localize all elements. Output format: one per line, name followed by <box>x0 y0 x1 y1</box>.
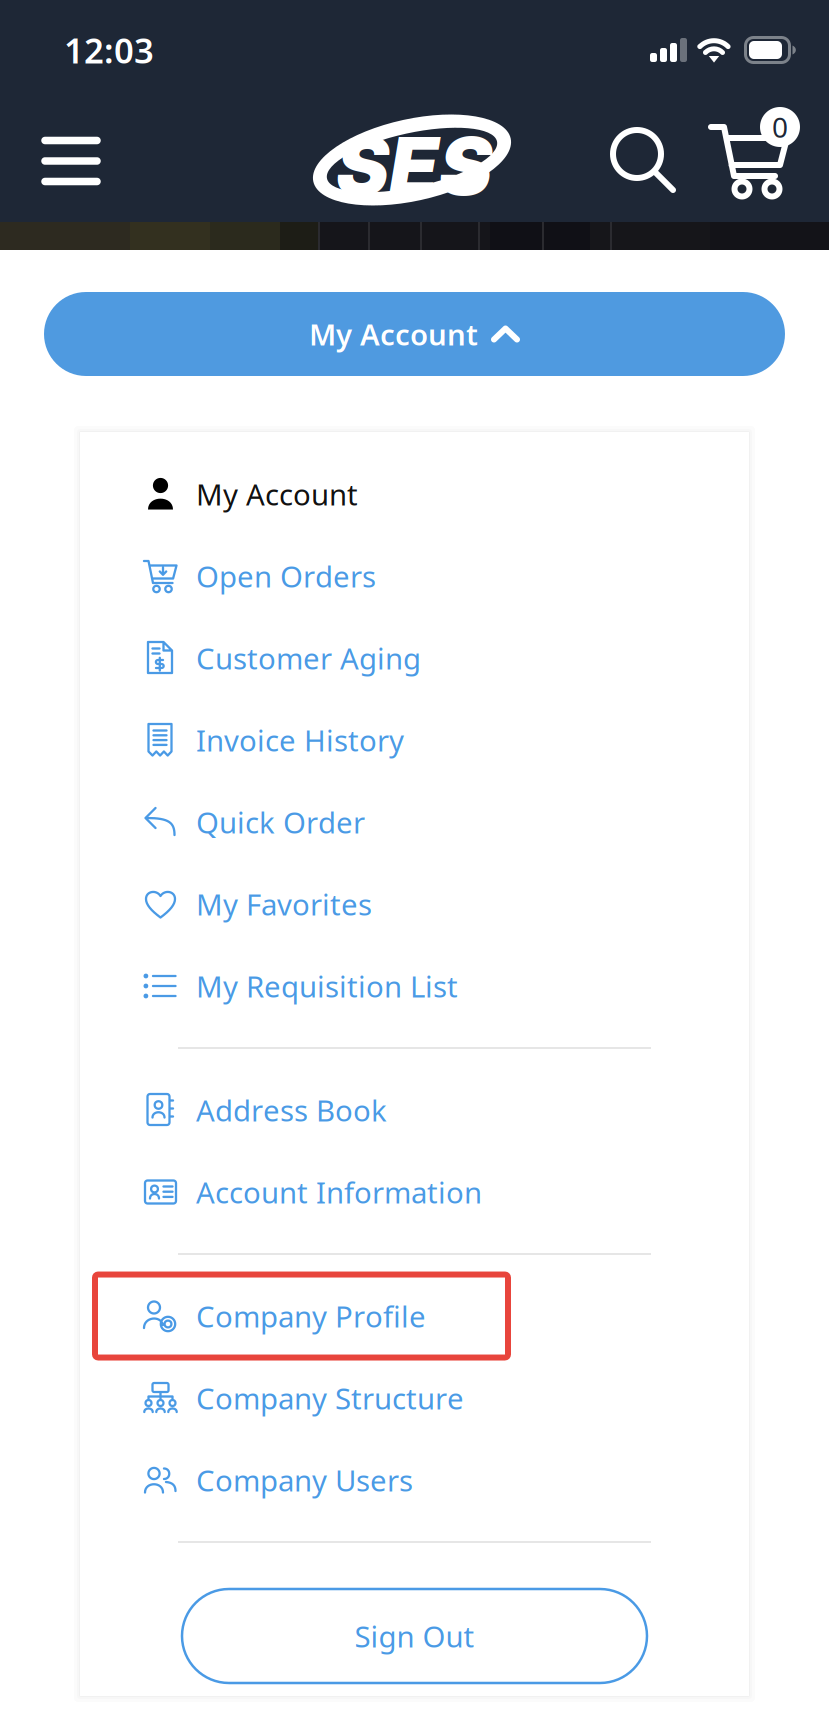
staticText: Company Profile <box>196 1296 426 1335</box>
staticText: 12:03 <box>64 27 154 73</box>
button[interactable]: Company Profile <box>80 1275 749 1357</box>
staticText: Sign Out <box>354 1616 474 1655</box>
button[interactable]: Account Information <box>80 1151 749 1233</box>
button[interactable]: My Favorites <box>80 863 749 945</box>
staticText: My Requisition List <box>196 966 458 1005</box>
button[interactable]: My Requisition List <box>80 945 749 1027</box>
button[interactable]: Sign Out <box>182 1589 647 1683</box>
staticText: 0 <box>772 108 788 146</box>
button[interactable]: Open Orders <box>80 535 749 617</box>
button[interactable]: Search <box>596 103 692 219</box>
button[interactable]: Menu <box>20 104 122 217</box>
staticText: My Favorites <box>196 884 372 923</box>
button[interactable]: Company Users <box>80 1439 749 1521</box>
staticText: Open Orders <box>196 556 376 595</box>
button[interactable]: Address Book <box>80 1069 749 1151</box>
staticText: My Account <box>309 314 478 353</box>
button[interactable]: Invoice History <box>80 699 749 781</box>
staticText: Address Book <box>196 1090 387 1129</box>
button[interactable]: My Account <box>44 292 785 376</box>
staticText: Quick Order <box>196 802 365 841</box>
button[interactable]: Quick Order <box>80 781 749 863</box>
staticText: Company Structure <box>196 1378 464 1417</box>
button[interactable]: Company Structure <box>80 1357 749 1439</box>
staticText: Invoice History <box>196 720 404 759</box>
staticText: Account Information <box>196 1172 482 1211</box>
button[interactable]: Customer Aging <box>80 617 749 699</box>
staticText: My Account <box>196 474 358 513</box>
button[interactable]: Shopping cart, 0 items <box>692 97 796 225</box>
staticText: Company Users <box>196 1460 413 1499</box>
staticText: SES <box>336 118 492 214</box>
staticText: Customer Aging <box>196 638 421 677</box>
